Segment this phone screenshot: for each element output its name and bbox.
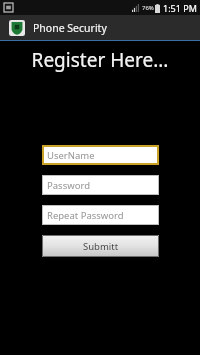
staticText: 76%: [142, 4, 154, 12]
button[interactable]: Phone Security app icon: [0, 15, 200, 40]
button[interactable]: Submitt: [42, 235, 159, 257]
staticText: Register Here...: [0, 47, 200, 73]
staticText: Repeat Password: [47, 209, 124, 222]
other: Phone Security app icon: [9, 20, 25, 36]
staticText: 1:51 PM: [163, 2, 197, 14]
staticText: Submitt: [83, 240, 119, 253]
button[interactable]: Password: [42, 175, 159, 195]
staticText: Password: [47, 179, 90, 192]
button[interactable]: Repeat Password: [42, 205, 159, 225]
button[interactable]: UserName: [42, 145, 159, 165]
staticText: UserName: [47, 149, 95, 162]
staticText: Phone Security: [33, 21, 107, 35]
